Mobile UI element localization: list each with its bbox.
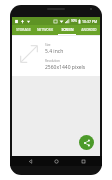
button[interactable]: NETWORK — [34, 25, 56, 35]
staticText: NETWORK — [37, 28, 53, 32]
button[interactable]: SCREEN — [56, 25, 78, 35]
staticText: 5.4 inch — [45, 48, 64, 55]
button[interactable]: Size — [12, 36, 100, 76]
staticText: ANDROID — [81, 28, 97, 32]
button[interactable]: Share — [79, 135, 94, 150]
staticText: 10:37 PM — [82, 19, 98, 24]
button[interactable]: Back — [23, 156, 37, 166]
staticText: 90% — [71, 19, 77, 23]
staticText: Size — [45, 43, 51, 47]
staticText: 2560x1440 pixels — [45, 64, 86, 71]
button[interactable]: Recent apps — [76, 156, 90, 166]
button[interactable]: ANDROID — [78, 25, 100, 35]
button[interactable]: STORAGE — [12, 25, 34, 35]
staticText: Resolution — [45, 59, 60, 63]
staticText: SCREEN — [61, 28, 74, 32]
staticText: STORAGE — [16, 28, 31, 32]
button[interactable]: Home — [49, 156, 63, 166]
